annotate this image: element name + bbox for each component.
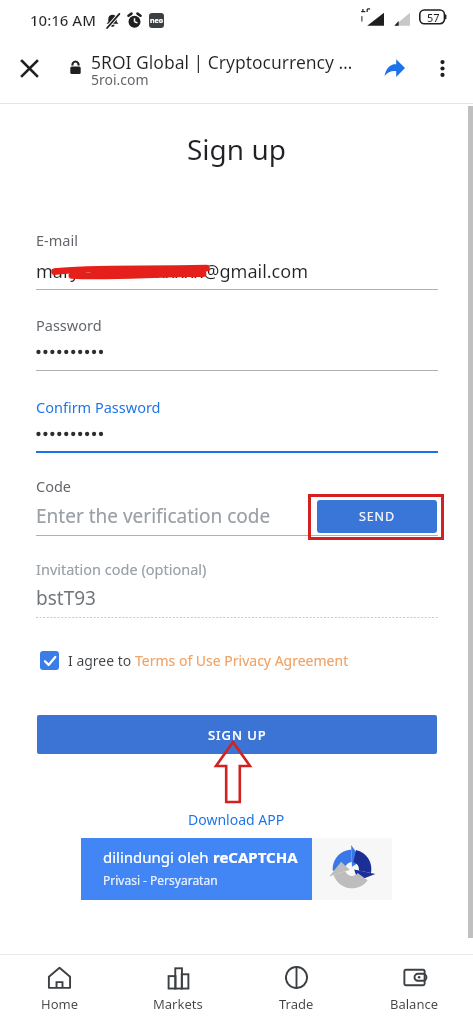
staticText: Confirm Password (36, 397, 161, 417)
staticText: Download APP (188, 810, 285, 829)
button[interactable]: Share (372, 46, 416, 90)
button[interactable]: More options (420, 46, 464, 90)
staticText: bstT93 (36, 585, 96, 611)
staticText: maryxxxxxxxxxxxxx@gmail.com (36, 259, 308, 284)
staticText: Balance (390, 995, 438, 1013)
staticText: Sign up (187, 130, 286, 168)
staticText: Invitation code (optional) (36, 559, 207, 579)
staticText: 5ROI Global | Cryptocurrency … (91, 50, 353, 74)
staticText: 10:16 AM (30, 10, 96, 30)
staticText: 57 (427, 10, 440, 25)
staticText: SEND (359, 508, 396, 525)
staticText: Enter the verification code (36, 503, 271, 529)
staticText: Code (36, 476, 72, 496)
button[interactable]: I agree to (40, 651, 349, 670)
staticText: dilindungi oleh (103, 847, 213, 867)
staticText: I agree to (68, 651, 135, 670)
staticText: Trade (279, 995, 314, 1013)
staticText: Terms of Use Privacy Agreement (135, 651, 349, 670)
button[interactable]: Markets (119, 955, 237, 1024)
staticText: Privasi - Persyaratan (103, 872, 218, 888)
button[interactable]: Trade (237, 955, 355, 1024)
button[interactable]: SEND (317, 500, 437, 533)
button[interactable]: Close (5, 44, 53, 92)
button[interactable]: Balance (355, 955, 473, 1024)
button[interactable]: SIGN UP (37, 715, 437, 754)
staticText: Home (41, 995, 78, 1013)
staticText: SIGN UP (208, 726, 267, 744)
staticText: Password (36, 315, 102, 335)
staticText: E-mail (36, 230, 78, 250)
staticText: neo (150, 16, 164, 26)
staticText: 5roi.com (91, 70, 149, 89)
button[interactable]: Home (0, 955, 119, 1024)
staticText: reCAPTCHA (213, 847, 298, 867)
staticText: Markets (153, 995, 203, 1013)
